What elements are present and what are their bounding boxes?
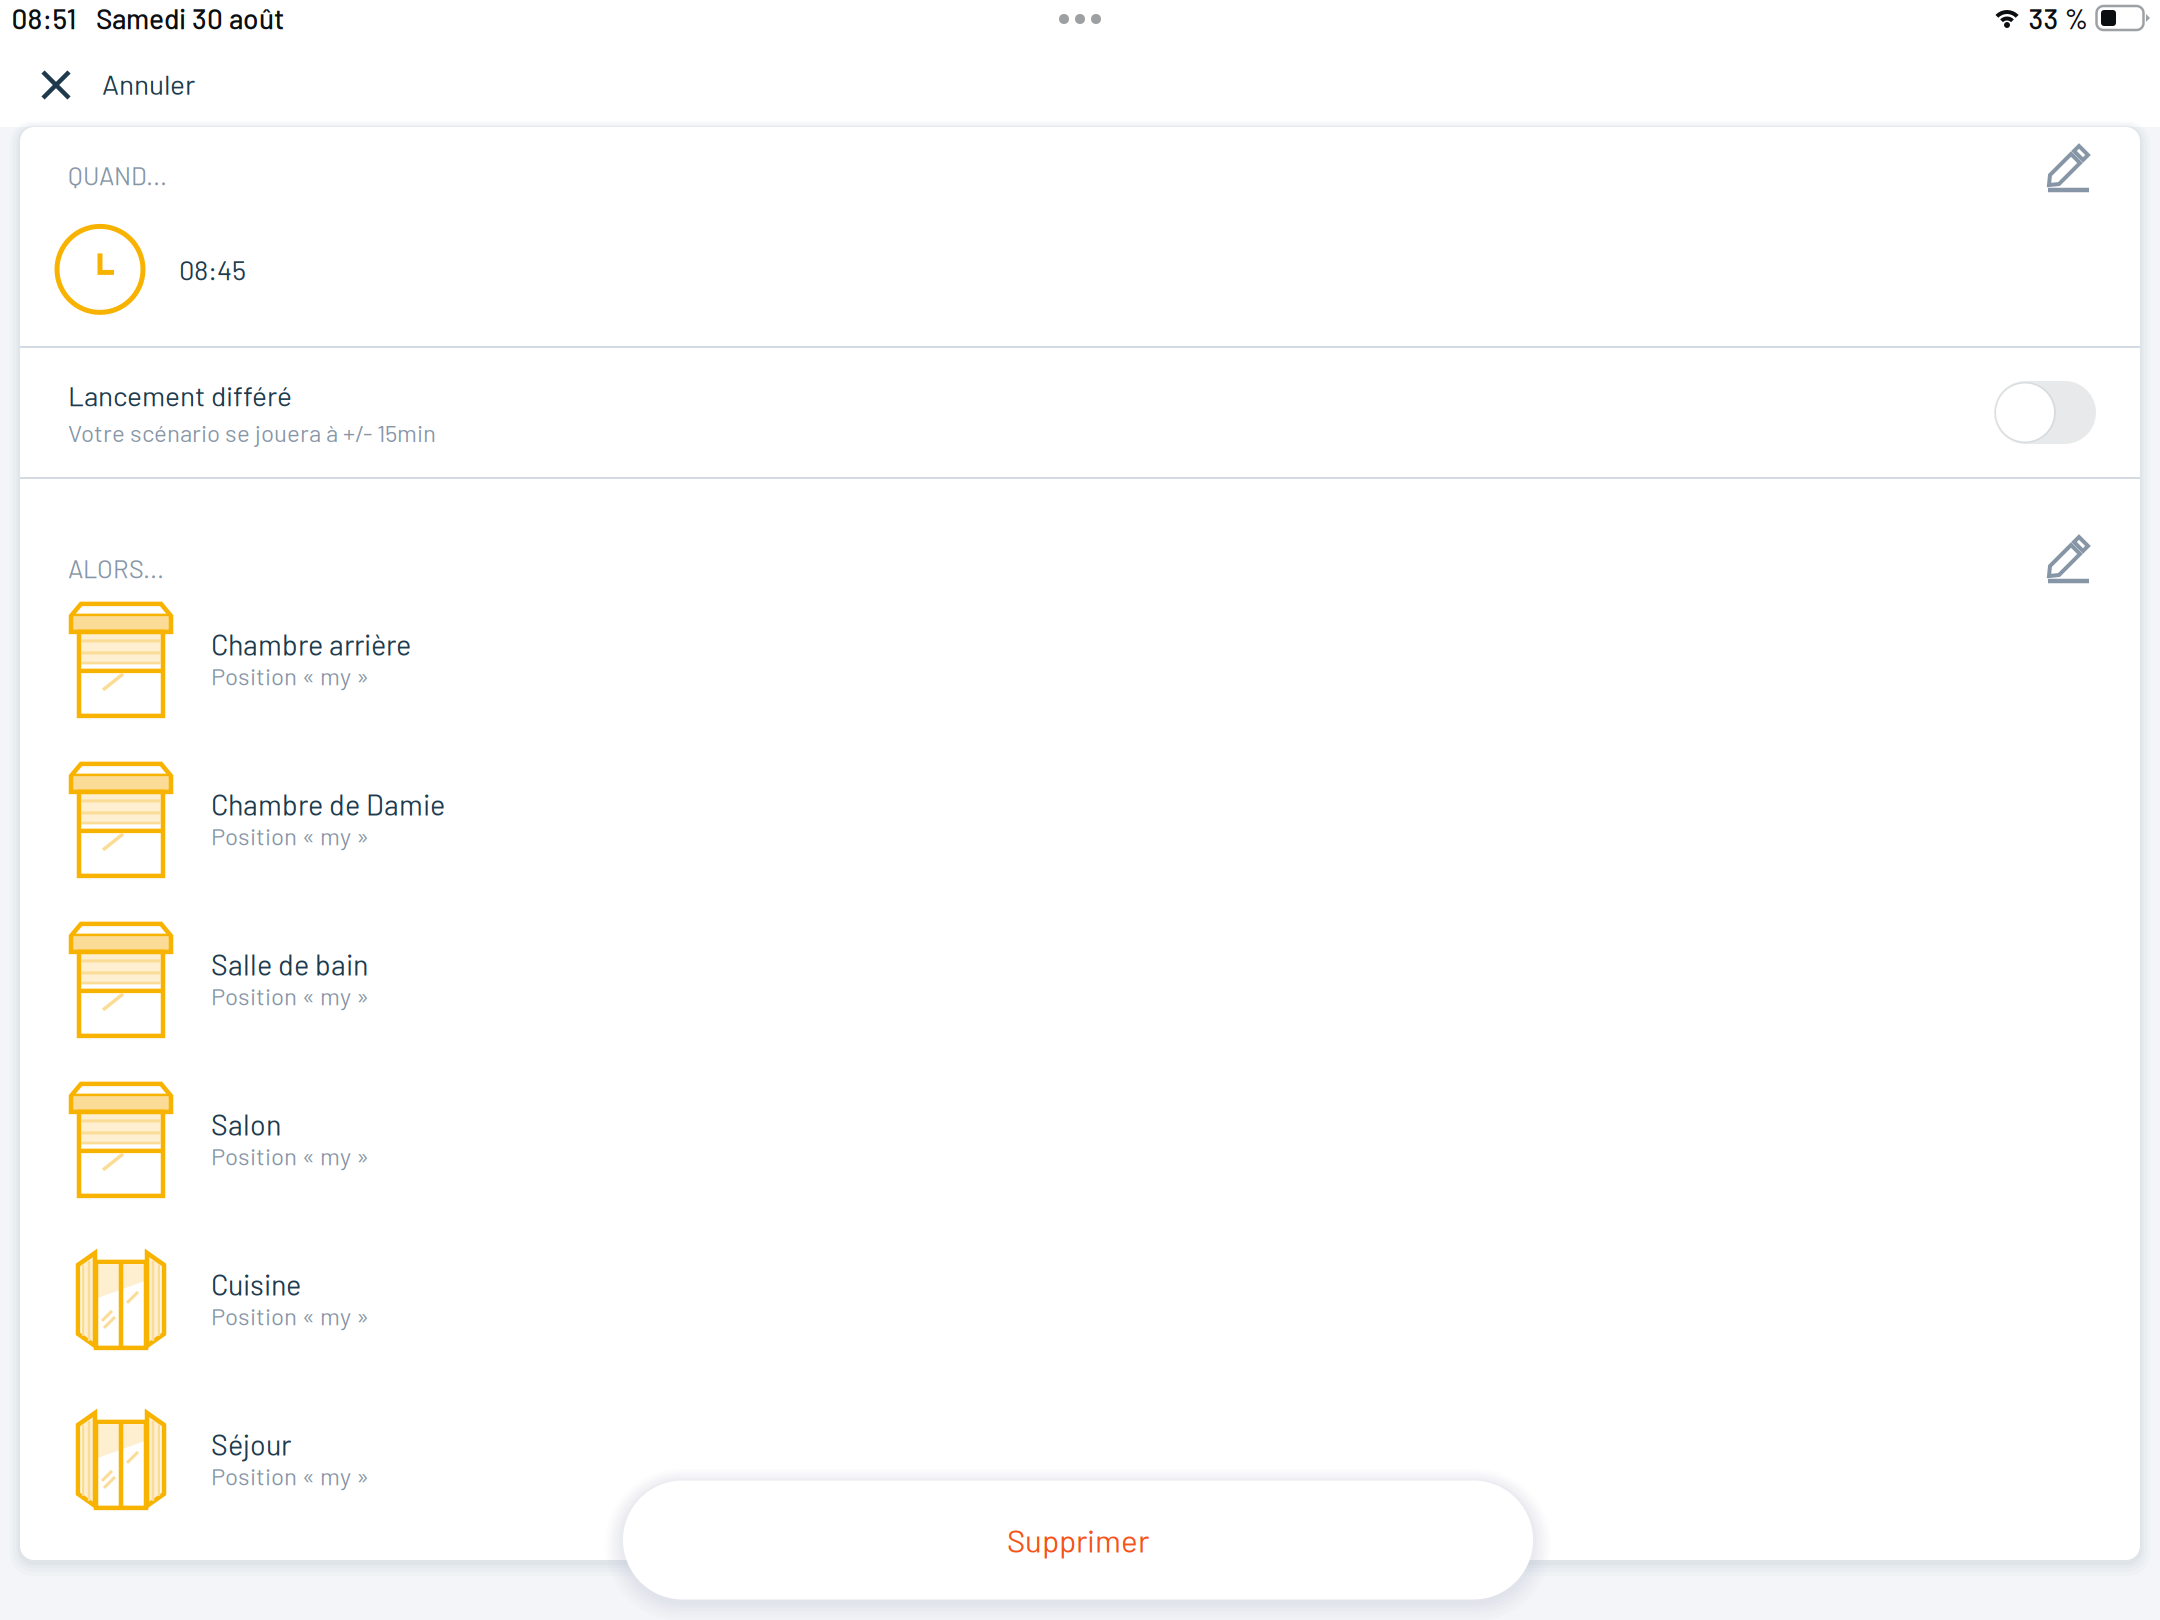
- staticText: Position « my »: [211, 981, 369, 1010]
- staticText: Lancement différé: [68, 378, 292, 412]
- button[interactable]: Chambre arrière: [20, 583, 2140, 743]
- button[interactable]: Séjour: [20, 1383, 2140, 1543]
- staticText: Votre scénario se jouera à +/- 15min: [68, 418, 436, 447]
- button[interactable]: Salle de bain: [20, 903, 2140, 1063]
- staticText: Salle de bain: [211, 947, 368, 981]
- staticText: Salon: [211, 1107, 281, 1141]
- staticText: QUAND...: [68, 160, 167, 190]
- button[interactable]: Chambre de Damie: [20, 743, 2140, 903]
- button[interactable]: Salon: [20, 1063, 2140, 1223]
- staticText: Chambre arrière: [211, 627, 411, 661]
- staticText: Séjour: [211, 1427, 291, 1461]
- staticText: Supprimer: [1007, 1521, 1149, 1559]
- staticText: Chambre de Damie: [211, 787, 445, 821]
- staticText: Position « my »: [211, 661, 369, 690]
- staticText: Position « my »: [211, 1461, 369, 1490]
- staticText: 33 %: [2028, 1, 2087, 35]
- button[interactable]: Annuler: [0, 48, 219, 126]
- button[interactable]: Lancement différé: [1994, 348, 2140, 477]
- button[interactable]: Modifier les actions: [2047, 479, 2140, 583]
- staticText: Annuler: [102, 67, 195, 100]
- staticText: Position « my »: [211, 821, 369, 850]
- staticText: Position « my »: [211, 1301, 369, 1330]
- staticText: Cuisine: [211, 1267, 301, 1301]
- button[interactable]: Modifier le déclencheur: [2047, 127, 2140, 192]
- button[interactable]: Supprimer: [598, 1460, 1558, 1620]
- staticText: Samedi 30 août: [96, 1, 284, 35]
- staticText: 08:45: [179, 253, 246, 286]
- button[interactable]: Cuisine: [20, 1223, 2140, 1383]
- staticText: ALORS...: [68, 553, 164, 583]
- staticText: Position « my »: [211, 1141, 369, 1170]
- staticText: 08:51: [11, 1, 76, 35]
